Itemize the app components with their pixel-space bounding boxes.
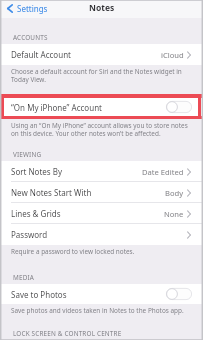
staticText: Date Edited [142, 167, 184, 177]
staticText: None [164, 209, 184, 219]
staticText: LOCK SCREEN & CONTROL CENTRE [13, 329, 122, 338]
button[interactable]: Save to Photos [0, 284, 203, 304]
staticText: Lines & Grids [11, 208, 61, 219]
staticText: Using an “On My iPhone” account allows y… [11, 121, 195, 138]
staticText: MEDIA [13, 273, 35, 282]
button[interactable]: Settings [4, 3, 48, 14]
staticText: Choose a default account for Siri and th… [11, 67, 195, 84]
button[interactable]: Sort Notes By [0, 161, 203, 182]
staticText: Require a password to view locked notes. [11, 247, 135, 256]
staticText: Save to Photos [11, 289, 67, 300]
button[interactable]: Lines & Grids [0, 203, 203, 224]
staticText: “On My iPhone” Account [11, 102, 102, 113]
button[interactable]: Password [0, 224, 203, 245]
button[interactable]: “On My iPhone” Account [0, 98, 203, 116]
staticText: Default Account [11, 49, 71, 60]
staticText: iCloud [161, 50, 184, 60]
staticText: ACCOUNTS [13, 33, 48, 42]
staticText: Notes [89, 2, 115, 14]
staticText: Body [165, 188, 184, 198]
staticText: Save photos and videos taken in Notes to… [11, 306, 184, 315]
button[interactable]: Toggle [166, 288, 192, 300]
staticText: Sort Notes By [11, 166, 63, 177]
button[interactable]: New Notes Start With [0, 182, 203, 203]
button[interactable]: Default Account [0, 44, 203, 65]
staticText: Password [11, 229, 48, 240]
staticText: New Notes Start With [11, 187, 92, 198]
staticText: VIEWING [13, 150, 42, 159]
button[interactable]: Toggle [166, 101, 192, 113]
staticText: Settings [17, 3, 48, 14]
